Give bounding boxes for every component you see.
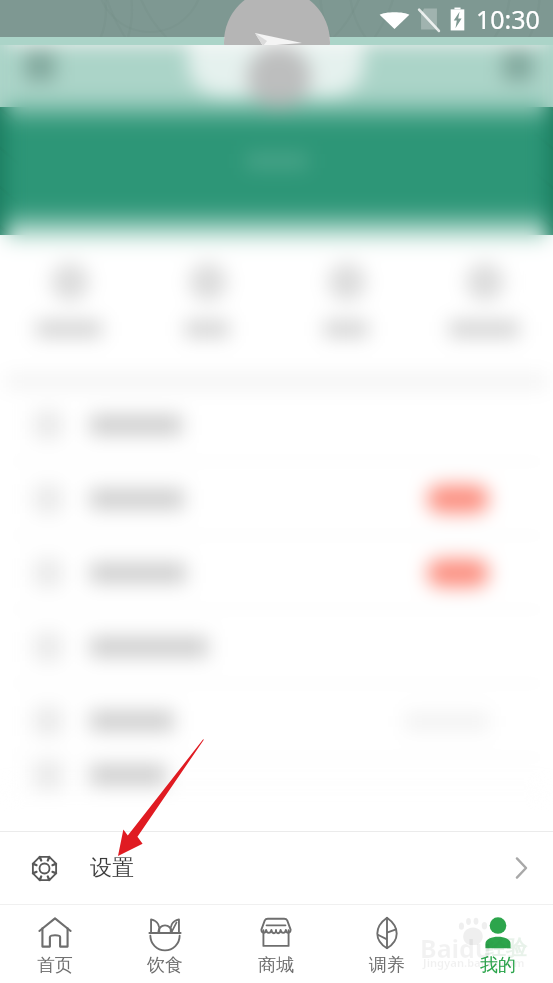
staticText: Jingyan.baidu.com [423,955,525,970]
staticText: 商城 [258,954,294,977]
other: Annotation arrow [0,0,553,983]
staticText: 10:30 [476,2,540,36]
staticText: 调养 [369,954,405,977]
button[interactable]: 设置 [0,831,553,905]
button[interactable]: 调养 [331,905,442,983]
button[interactable]: 我的 [442,905,553,983]
other: Wi-Fi [379,7,410,31]
staticText: 首页 [37,954,73,977]
other: Open settings [509,856,533,880]
staticText: 经验 [485,935,527,961]
button[interactable]: 商城 [220,905,331,983]
button[interactable]: 饮食 [110,905,220,983]
staticText: Baidu [420,931,492,965]
staticText: 我的 [480,954,516,977]
staticText: 饮食 [147,954,183,977]
button[interactable]: 首页 [0,905,110,983]
staticText: 设置 [90,854,134,882]
